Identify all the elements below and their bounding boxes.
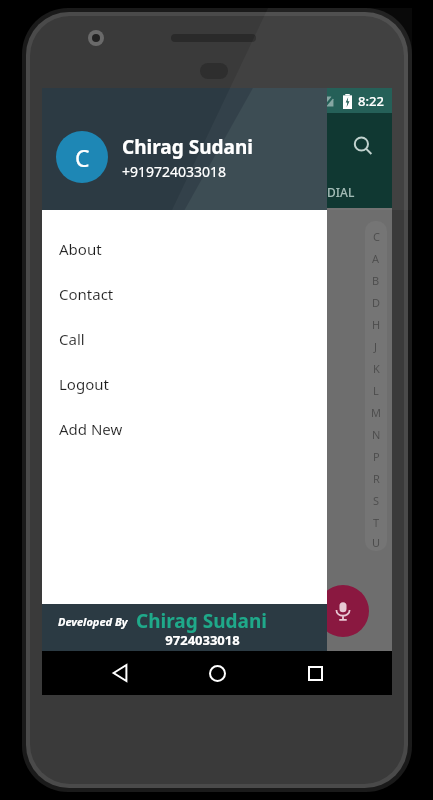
staticText: R (373, 471, 380, 486)
staticText: Contact (59, 284, 114, 304)
staticText: B (372, 273, 380, 288)
staticText: Chirag Sudani (122, 134, 253, 160)
staticText: H (372, 317, 381, 332)
staticText: 9724033018 (165, 631, 240, 649)
staticText: S (373, 493, 380, 508)
staticText: Add New (59, 419, 123, 439)
staticText: Logout (59, 374, 109, 394)
button[interactable]: Voice search (317, 585, 369, 637)
staticText: About (59, 239, 102, 259)
staticText: K (373, 361, 380, 376)
staticText: C (373, 229, 380, 244)
staticText: A (372, 251, 380, 266)
staticText: P (373, 449, 380, 464)
staticText: +919724033018 (122, 162, 227, 181)
staticText: Call (59, 329, 85, 349)
staticText: DIAL (327, 184, 355, 200)
staticText: J (374, 339, 378, 354)
staticText: N (372, 427, 381, 442)
staticText: 8:22 (358, 92, 384, 110)
button[interactable]: Call (42, 316, 327, 361)
button[interactable]: Back (100, 653, 140, 693)
button[interactable]: Developed By (42, 604, 327, 651)
staticText: Developed By (58, 614, 128, 629)
staticText: C (75, 142, 90, 173)
staticText: T (373, 515, 380, 530)
button[interactable]: Search (346, 129, 380, 163)
button[interactable]: Recents (295, 653, 335, 693)
staticText: D (372, 295, 381, 310)
button[interactable]: Alphabet index (365, 221, 387, 551)
staticText: M (371, 405, 381, 420)
staticText: Chirag Sudani (136, 608, 267, 634)
button[interactable]: Add New (42, 406, 327, 451)
button[interactable]: About (42, 226, 327, 271)
staticText: L (373, 383, 379, 398)
staticText: U (372, 535, 381, 550)
button[interactable]: DIAL (327, 184, 355, 200)
button[interactable]: Home (197, 653, 237, 693)
button[interactable]: Contact (42, 271, 327, 316)
button[interactable]: Logout (42, 361, 327, 406)
